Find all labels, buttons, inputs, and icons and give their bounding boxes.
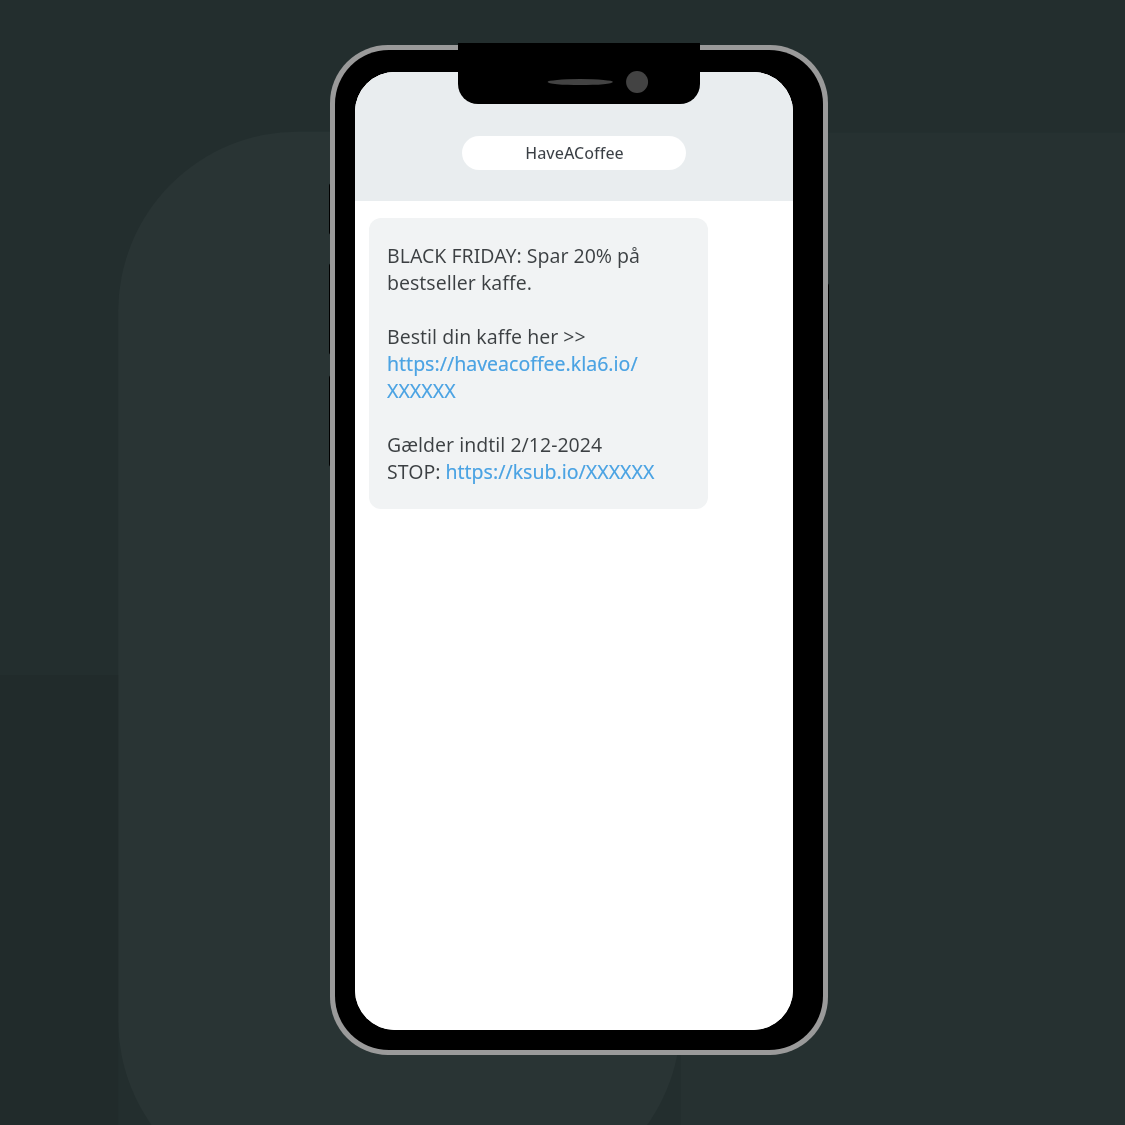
staticText: BLACK FRIDAY: Spar 20% på bestseller kaf… bbox=[387, 242, 690, 485]
button[interactable]: BLACK FRIDAY: Spar 20% på bestseller kaf… bbox=[369, 218, 708, 509]
staticText: HaveACoffee bbox=[525, 142, 624, 164]
button[interactable]: HaveACoffee bbox=[462, 136, 686, 170]
